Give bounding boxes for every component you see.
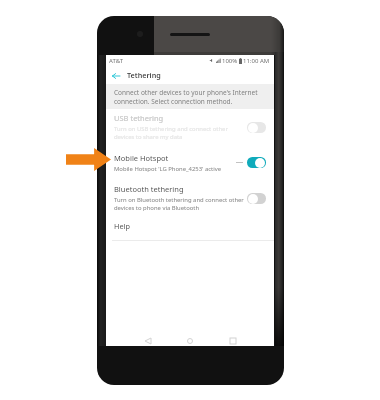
button[interactable]: Turn off — [247, 157, 266, 168]
staticText: Turn on Bluetooth tethering and connect … — [114, 196, 244, 212]
button[interactable]: Mobile Hotspot — [106, 145, 274, 180]
staticText: Connect other devices to your phone's In… — [114, 88, 258, 106]
staticText: Mobile Hotspot 'LG Phone_4253' active — [114, 165, 222, 173]
button[interactable]: Turn on — [247, 122, 266, 133]
button[interactable]: Home — [184, 335, 196, 347]
staticText: Tethering — [127, 70, 161, 80]
staticText: 100% — [222, 57, 238, 65]
button[interactable]: USB tethering — [106, 109, 274, 145]
staticText: Mobile Hotspot — [114, 153, 169, 163]
staticText: Help — [114, 221, 130, 231]
button[interactable]: Help — [106, 216, 274, 241]
button[interactable]: Recent apps — [227, 335, 239, 347]
staticText: USB tethering — [114, 113, 164, 123]
button[interactable]: Back — [109, 69, 122, 82]
staticText: AT&T — [109, 57, 123, 65]
button[interactable]: Back — [142, 335, 154, 347]
button[interactable]: Bluetooth tethering — [106, 180, 274, 216]
staticText: 11:00 AM — [243, 57, 270, 65]
button[interactable]: Turn on — [247, 193, 266, 204]
staticText: Bluetooth tethering — [114, 184, 184, 194]
staticText: Turn on USB tethering and connect other … — [114, 125, 228, 141]
